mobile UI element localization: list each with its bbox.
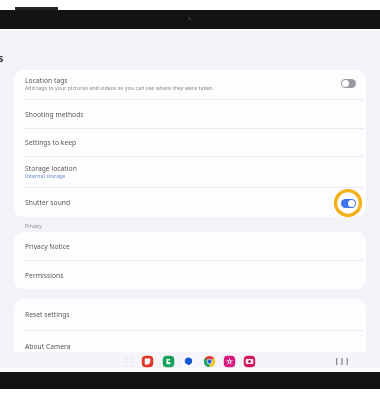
button[interactable]: Storage location xyxy=(14,157,366,187)
staticText: Settings to keep xyxy=(25,138,77,147)
button[interactable]: Chrome xyxy=(203,355,216,368)
button[interactable]: Privacy Notice xyxy=(14,232,366,260)
button[interactable]: Reset settings xyxy=(14,299,366,330)
button[interactable]: Keep xyxy=(141,355,154,368)
button[interactable]: Location tags xyxy=(14,70,366,99)
button[interactable]: Shooting methods xyxy=(14,100,366,128)
button[interactable]: Recents xyxy=(336,358,348,365)
button[interactable]: Gallery xyxy=(223,355,236,368)
button[interactable]: Turn on xyxy=(341,79,356,88)
staticText: Location tags xyxy=(25,76,68,85)
staticText: Internal storage xyxy=(25,172,66,179)
button[interactable]: Camera xyxy=(243,355,256,368)
staticText: Privacy Notice xyxy=(25,242,70,251)
button[interactable]: Shutter sound xyxy=(14,188,366,217)
button[interactable]: Permissions xyxy=(14,261,366,289)
staticText: Storage location xyxy=(25,164,77,173)
button[interactable]: Phone xyxy=(162,355,175,368)
staticText: Add tags to your pictures and videos so … xyxy=(25,84,215,91)
button[interactable]: Turn off xyxy=(341,199,356,208)
staticText: s xyxy=(0,50,4,65)
button[interactable]: Settings to keep xyxy=(14,129,366,156)
staticText: Permissions xyxy=(25,271,64,280)
staticText: Shooting methods xyxy=(25,110,84,119)
staticText: About Camera xyxy=(25,342,71,351)
button[interactable]: About Camera xyxy=(14,331,366,362)
staticText: Shutter sound xyxy=(25,198,71,207)
staticText: Reset settings xyxy=(25,310,70,319)
button[interactable]: Messages xyxy=(182,355,195,368)
staticText: Privacy xyxy=(25,223,42,230)
button[interactable]: All apps xyxy=(124,356,134,366)
